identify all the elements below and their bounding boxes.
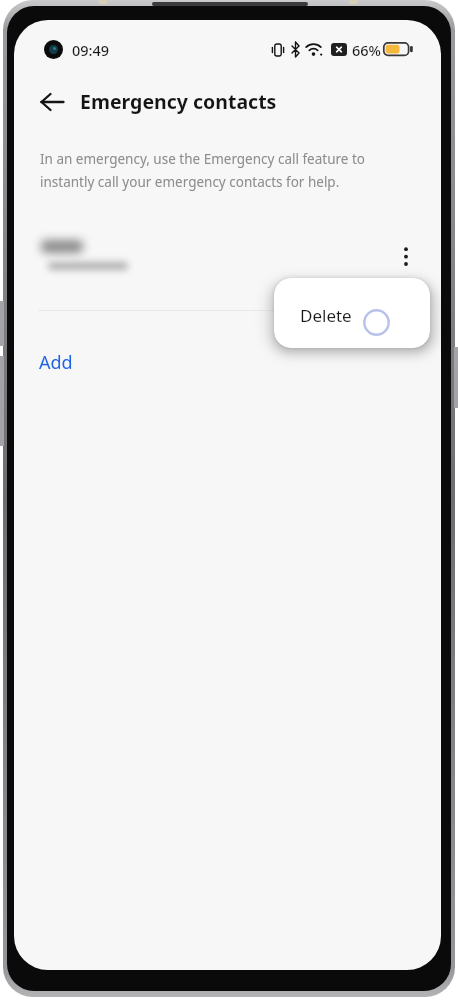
button[interactable]	[14, 224, 441, 311]
staticText: Delete	[300, 304, 352, 327]
button[interactable]	[32, 84, 72, 120]
staticText: In an emergency, use the Emergency call …	[40, 150, 365, 191]
staticText: Emergency contacts	[80, 88, 277, 115]
staticText: 66%	[352, 40, 381, 60]
button[interactable]: Add	[30, 346, 114, 378]
staticText: Add	[39, 350, 73, 375]
staticText: 09:49	[72, 40, 110, 60]
button[interactable]	[392, 237, 420, 277]
button[interactable]: Delete	[274, 278, 430, 348]
